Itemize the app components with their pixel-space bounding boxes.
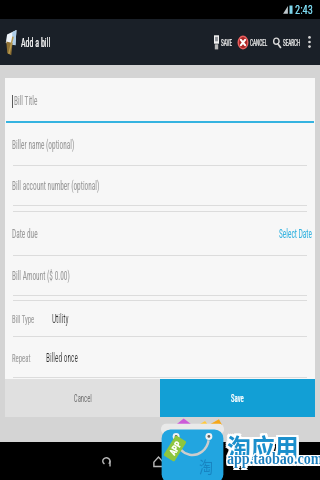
- button[interactable]: Add a bill: [0, 19, 71, 65]
- staticText: 淘应用: [227, 428, 300, 466]
- staticText: Cancel: [74, 392, 92, 405]
- staticText: Bill Amount ($ 0.00): [12, 269, 70, 283]
- button[interactable]: Date due: [5, 212, 315, 256]
- staticText: app.taobao.com: [229, 449, 320, 467]
- staticText: app.taobao.com: [226, 449, 320, 467]
- staticText: app.taobao.com: [227, 449, 320, 467]
- button[interactable]: Bill Amount ($ 0.00): [5, 256, 315, 296]
- staticText: 淘应用: [225, 428, 298, 466]
- staticText: Utility: [52, 312, 69, 326]
- staticText: app.taobao.com: [227, 452, 320, 470]
- button[interactable]: SEARCH: [270, 19, 303, 65]
- staticText: 淘应用: [225, 430, 298, 468]
- staticText: app.taobao.com: [227, 450, 320, 468]
- button[interactable]: Bill account number (optional): [5, 166, 315, 206]
- staticText: Bill Type: [12, 313, 35, 326]
- staticText: CANCEL: [250, 37, 268, 48]
- button[interactable]: Cancel: [5, 379, 160, 417]
- staticText: 淘应用: [227, 426, 300, 464]
- staticText: Repeat: [12, 352, 31, 365]
- staticText: Billed once: [46, 351, 78, 365]
- staticText: Bill account number (optional): [12, 179, 100, 193]
- staticText: 淘应用: [227, 430, 300, 468]
- staticText: Save: [231, 392, 244, 405]
- staticText: 2:43: [295, 2, 313, 17]
- button[interactable]: SAVE: [212, 19, 236, 65]
- staticText: app.taobao.com: [226, 452, 320, 470]
- staticText: 淘应用: [225, 426, 298, 464]
- staticText: 淘应用: [229, 428, 302, 466]
- staticText: Biller name (optional): [12, 138, 74, 152]
- staticText: 淘: [199, 454, 214, 477]
- staticText: SEARCH: [283, 37, 301, 48]
- button[interactable]: Back: [89, 444, 123, 478]
- button[interactable]: Biller name (optional): [5, 123, 315, 166]
- button[interactable]: Home: [141, 444, 175, 478]
- staticText: 淘应用: [229, 426, 302, 464]
- staticText: app.taobao.com: [226, 450, 320, 468]
- staticText: app.taobao.com: [229, 450, 320, 468]
- staticText: Date due: [12, 227, 38, 241]
- staticText: Bill Title: [14, 94, 38, 108]
- button[interactable]: More options: [303, 19, 315, 65]
- staticText: SAVE: [221, 37, 233, 48]
- button[interactable]: Save: [160, 379, 315, 417]
- button[interactable]: CANCEL: [236, 19, 270, 65]
- staticText: Add a bill: [21, 35, 50, 50]
- staticText: Select Date: [279, 227, 312, 241]
- button[interactable]: Repeat: [5, 337, 315, 378]
- button[interactable]: Bill Title: [5, 78, 315, 123]
- button[interactable]: Bill Type: [5, 301, 315, 337]
- staticText: app.taobao.com: [229, 452, 320, 470]
- staticText: APP: [167, 439, 184, 457]
- staticText: 淘应用: [229, 430, 302, 468]
